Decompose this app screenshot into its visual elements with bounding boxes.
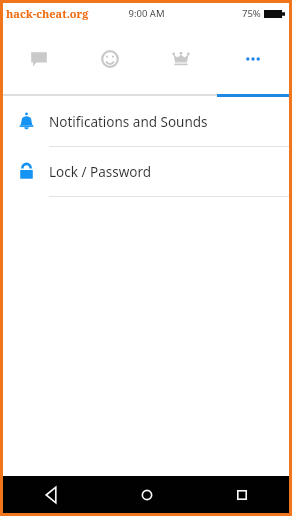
button[interactable]: Back <box>3 476 99 513</box>
button[interactable]: Lock / Password <box>3 147 289 196</box>
staticText: 75% <box>242 7 261 20</box>
staticText: Lock / Password <box>49 163 152 181</box>
button[interactable]: Chats <box>3 24 74 94</box>
button[interactable]: Recent apps <box>194 476 289 513</box>
button[interactable]: Stickers <box>74 24 145 94</box>
staticText: 9:00 AM <box>128 7 165 20</box>
button[interactable]: Premium <box>145 24 217 94</box>
button[interactable]: Notifications and Sounds <box>3 97 289 146</box>
button[interactable]: More <box>217 24 289 94</box>
staticText: Notifications and Sounds <box>49 113 208 131</box>
staticText: hack-cheat.org <box>6 6 89 21</box>
button[interactable]: Home <box>99 476 194 513</box>
